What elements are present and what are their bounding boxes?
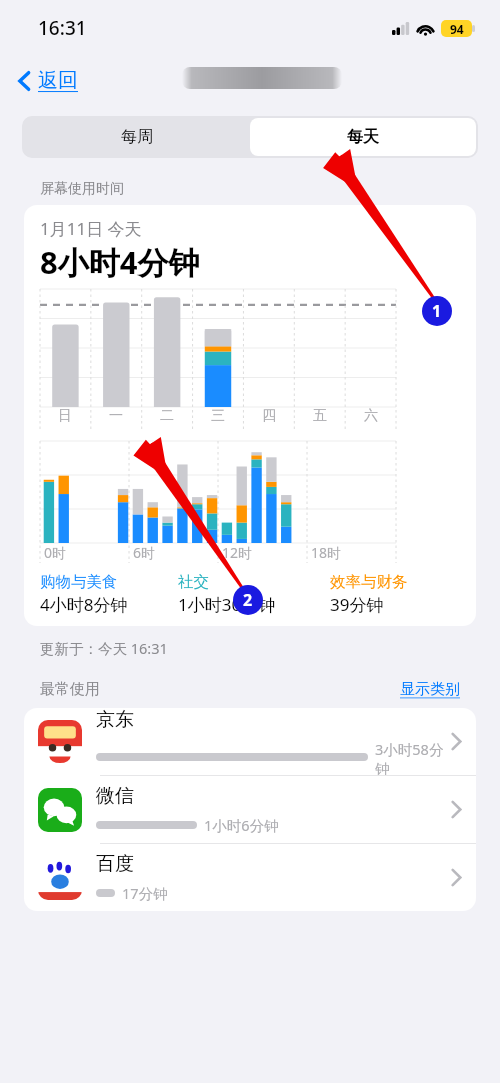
- staticText: 1小时30分钟: [178, 593, 276, 616]
- staticText: 效率与财务: [330, 572, 408, 592]
- staticText: 94: [450, 21, 464, 37]
- staticText: 2: [243, 589, 253, 611]
- button[interactable]: 京东: [24, 708, 476, 775]
- staticText: 屏幕使用时间: [40, 180, 124, 198]
- button[interactable]: 每周: [24, 118, 250, 156]
- button[interactable]: 效率与财务: [330, 572, 462, 616]
- staticText: 五: [313, 407, 327, 425]
- other: 查看详情: [451, 868, 462, 887]
- staticText: 三: [211, 407, 225, 425]
- staticText: 12时: [222, 543, 253, 562]
- staticText: 18时: [311, 543, 342, 562]
- staticText: 京东: [96, 708, 134, 732]
- staticText: 6时: [133, 543, 156, 562]
- staticText: 1月11日 今天: [40, 217, 142, 240]
- staticText: 返回: [38, 68, 78, 93]
- staticText: 39分钟: [330, 593, 384, 616]
- staticText: 百度: [96, 852, 134, 876]
- staticText: 每周: [121, 127, 153, 147]
- staticText: 购物与美食: [40, 572, 118, 592]
- staticText: 最常使用: [40, 680, 100, 699]
- staticText: 每天: [347, 127, 379, 147]
- staticText: 微信: [96, 784, 134, 808]
- staticText: 社交: [178, 572, 209, 592]
- other: 查看详情: [451, 732, 462, 751]
- button[interactable]: 显示类别: [400, 680, 460, 699]
- staticText: 显示类别: [400, 680, 460, 699]
- button[interactable]: 购物与美食: [40, 572, 178, 616]
- staticText: 二: [160, 407, 174, 425]
- button[interactable]: 返回: [14, 64, 82, 97]
- staticText: 8小时4分钟: [40, 241, 200, 283]
- staticText: 一: [109, 407, 123, 425]
- button[interactable]: 1月11日 今天: [24, 205, 476, 626]
- staticText: 日: [58, 407, 72, 425]
- button[interactable]: 百度: [24, 844, 476, 911]
- staticText: 0时: [44, 543, 67, 562]
- staticText: 4小时8分钟: [40, 593, 128, 616]
- staticText: 3小时58分钟: [375, 739, 445, 775]
- staticText: 六: [364, 407, 378, 425]
- staticText: 16:31: [38, 15, 87, 41]
- button[interactable]: 每天: [250, 118, 476, 156]
- button[interactable]: 社交: [178, 572, 330, 616]
- staticText: 1: [432, 300, 442, 322]
- staticText: 更新于：今天 16:31: [40, 638, 168, 658]
- other: 查看详情: [451, 800, 462, 819]
- staticText: 17分钟: [122, 883, 168, 903]
- button[interactable]: 微信: [24, 776, 476, 843]
- staticText: 四: [262, 407, 276, 425]
- staticText: 1小时6分钟: [204, 815, 279, 835]
